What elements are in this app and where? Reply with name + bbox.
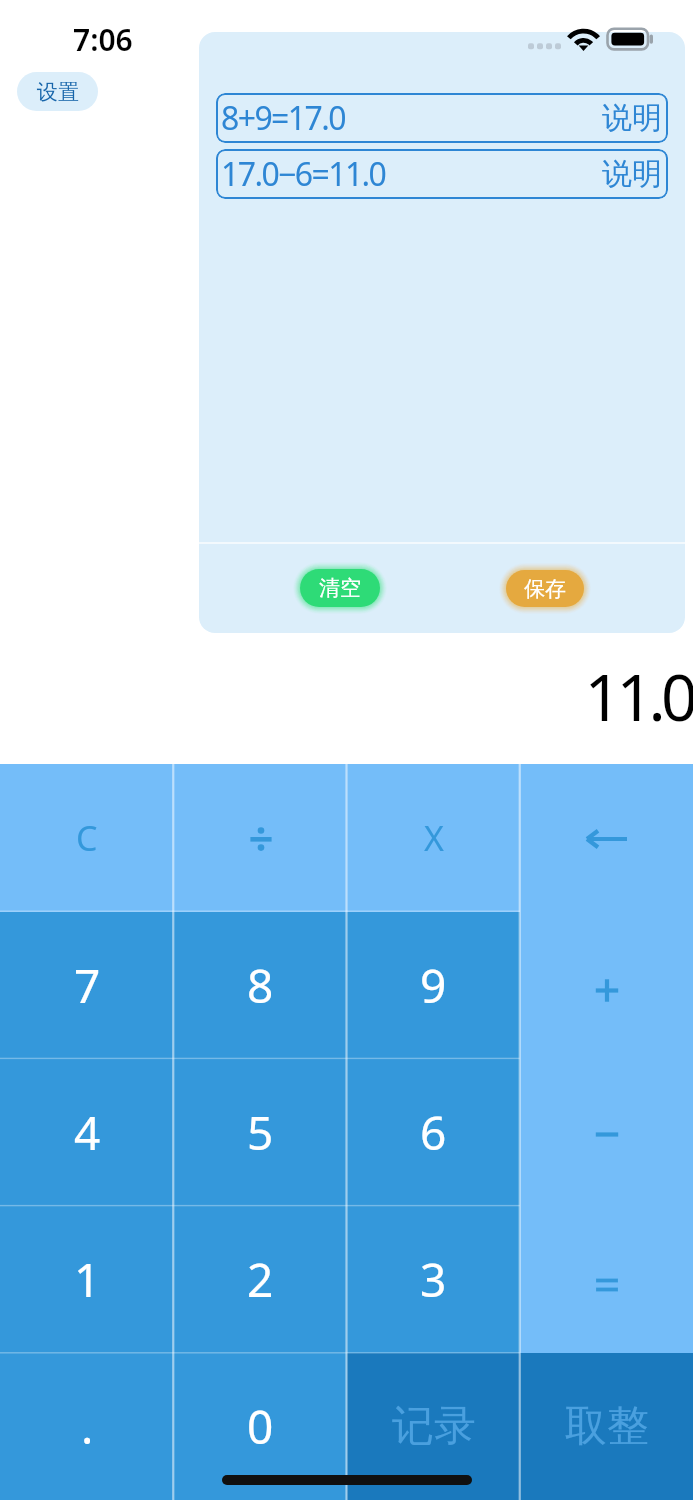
staticText: 7:06 — [73, 19, 133, 60]
staticText: 取整 — [565, 1400, 649, 1453]
button[interactable]: 9 — [347, 912, 520, 1059]
staticText: 清空 — [319, 575, 361, 601]
button[interactable]: 17.0−6=11.0 — [216, 149, 668, 199]
staticText: . — [81, 1395, 94, 1458]
staticText: X — [424, 815, 444, 861]
staticText: 2 — [247, 1248, 274, 1311]
staticText: 5 — [247, 1101, 274, 1164]
button[interactable]: 2 — [174, 1206, 347, 1353]
button[interactable]: 设置 — [17, 72, 98, 111]
staticText: 记录 — [392, 1400, 476, 1453]
button[interactable]: 取整 — [520, 1353, 693, 1500]
staticText: 7 — [74, 954, 101, 1017]
staticText: 6 — [420, 1101, 447, 1164]
button[interactable]: 6 — [347, 1059, 520, 1206]
button[interactable]: 4 — [0, 1059, 174, 1206]
button[interactable]: 1 — [0, 1206, 174, 1353]
button[interactable]: Minus — [520, 1059, 693, 1206]
button[interactable]: 记录 — [347, 1353, 520, 1500]
button[interactable]: Plus — [520, 912, 693, 1059]
staticText: 17.0−6=11.0 — [221, 152, 386, 196]
button[interactable]: C — [0, 764, 174, 912]
button[interactable]: Divide — [174, 764, 347, 912]
button[interactable]: 5 — [174, 1059, 347, 1206]
button[interactable]: Equals — [520, 1206, 693, 1353]
button[interactable]: X — [347, 764, 520, 912]
button[interactable]: 8+9=17.0 — [216, 93, 668, 143]
button[interactable]: 8 — [174, 912, 347, 1059]
button[interactable]: 保存 — [506, 570, 584, 607]
button[interactable]: 7 — [0, 912, 174, 1059]
staticText: 设置 — [37, 79, 79, 105]
staticText: 11.0 — [0, 653, 693, 740]
staticText: 8 — [247, 954, 274, 1017]
staticText: 4 — [74, 1101, 101, 1164]
button[interactable]: 0 — [174, 1353, 347, 1500]
staticText: 保存 — [524, 576, 566, 602]
staticText: 说明 — [602, 99, 662, 137]
staticText: 0 — [247, 1395, 274, 1458]
staticText: 说明 — [602, 155, 662, 193]
button[interactable]: 3 — [347, 1206, 520, 1353]
button[interactable]: . — [0, 1353, 174, 1500]
staticText: 3 — [420, 1248, 447, 1311]
button[interactable]: Backspace — [520, 764, 693, 912]
staticText: 8+9=17.0 — [221, 96, 345, 140]
staticText: 9 — [420, 954, 447, 1017]
staticText: C — [76, 815, 98, 861]
staticText: 1 — [74, 1248, 101, 1311]
button[interactable]: 清空 — [300, 569, 380, 607]
